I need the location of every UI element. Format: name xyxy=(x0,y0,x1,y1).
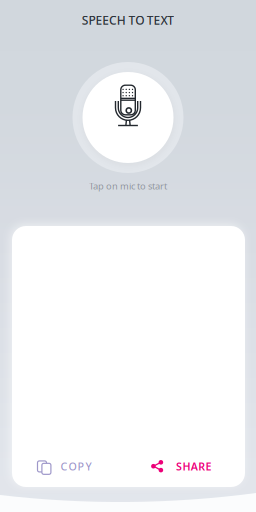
staticText: COPY xyxy=(60,459,91,473)
button[interactable]: COPY xyxy=(35,459,90,473)
button[interactable]: SHARE xyxy=(150,459,211,473)
button[interactable]: Start recording xyxy=(72,62,183,173)
staticText: SPEECH TO TEXT xyxy=(82,12,174,28)
staticText: SHARE xyxy=(176,459,212,473)
staticText: Tap on mic to start xyxy=(89,180,167,192)
